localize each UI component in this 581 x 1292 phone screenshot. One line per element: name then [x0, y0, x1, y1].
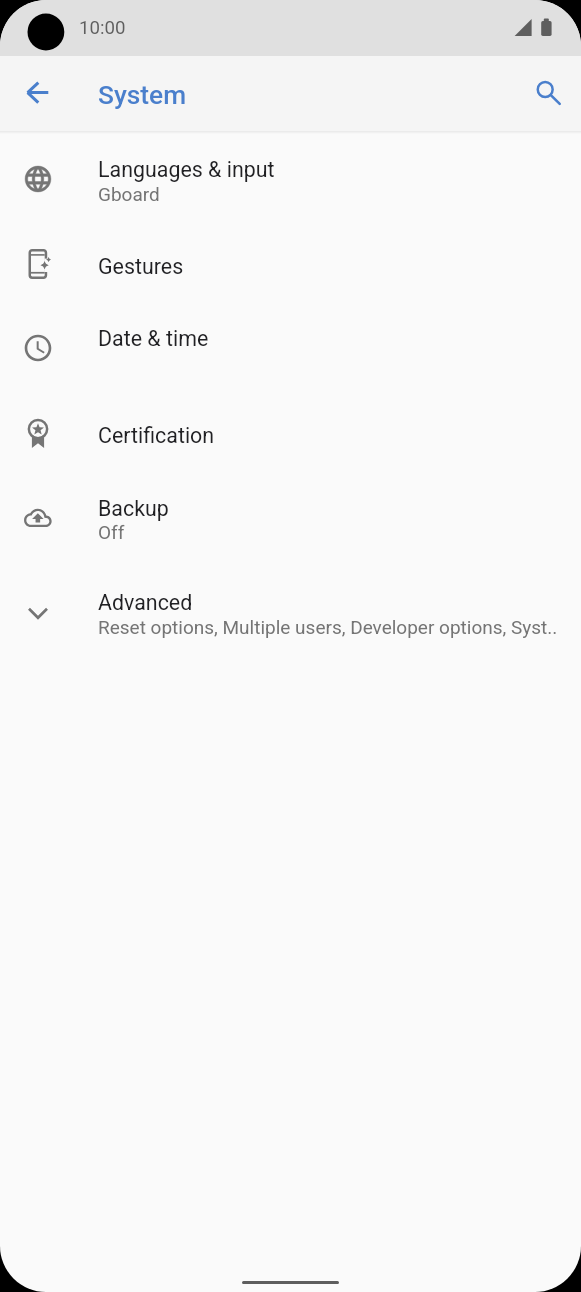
staticText: 10:00: [79, 17, 126, 39]
staticText: Backup: [98, 496, 169, 521]
button[interactable]: [0, 218, 581, 306]
button[interactable]: [0, 135, 581, 218]
button[interactable]: Navigate up: [13, 69, 61, 117]
button[interactable]: Search settings: [524, 69, 572, 117]
button[interactable]: [0, 476, 581, 560]
staticText: Advanced: [98, 590, 193, 615]
button[interactable]: [0, 392, 581, 476]
button[interactable]: [0, 560, 581, 656]
staticText: Languages & input: [98, 157, 275, 182]
staticText: Gestures: [98, 254, 184, 279]
staticText: Off: [98, 521, 578, 543]
staticText: Gboard: [98, 183, 578, 205]
staticText: Date & time: [98, 326, 209, 351]
button[interactable]: [0, 306, 581, 392]
staticText: System: [98, 80, 187, 111]
staticText: Certification: [98, 423, 215, 448]
staticText: Reset options, Multiple users, Developer…: [98, 616, 578, 638]
